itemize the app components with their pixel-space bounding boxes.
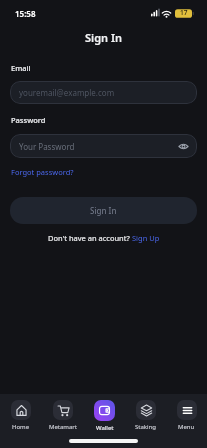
staticText: Staking (135, 423, 156, 431)
staticText: Your Password (19, 141, 75, 152)
staticText: Metamart (49, 423, 77, 431)
staticText: Password (11, 115, 46, 125)
button[interactable]: Sign Up (132, 233, 160, 243)
staticText: youremail@example.com (19, 87, 115, 98)
staticText: Don't have an account? (48, 233, 132, 243)
button[interactable]: Staking (125, 400, 166, 431)
button[interactable]: Your Password (10, 134, 197, 158)
button[interactable]: Forgot password? (11, 167, 74, 177)
staticText: Wallet (96, 424, 114, 432)
button[interactable]: youremail@example.com (10, 81, 197, 104)
button[interactable]: Wallet (84, 400, 125, 432)
button[interactable]: Home (0, 400, 42, 431)
staticText: Menu (178, 423, 195, 431)
button[interactable]: Sign In (10, 197, 197, 224)
staticText: Sign In (90, 205, 117, 216)
staticText: 17 (180, 8, 188, 17)
staticText: 15:58 (15, 8, 36, 19)
staticText: Email (11, 63, 31, 73)
button[interactable]: Metamart (42, 400, 84, 431)
button[interactable]: Menu (166, 400, 207, 431)
staticText: Sign In (85, 30, 123, 45)
staticText: Home (12, 423, 30, 431)
